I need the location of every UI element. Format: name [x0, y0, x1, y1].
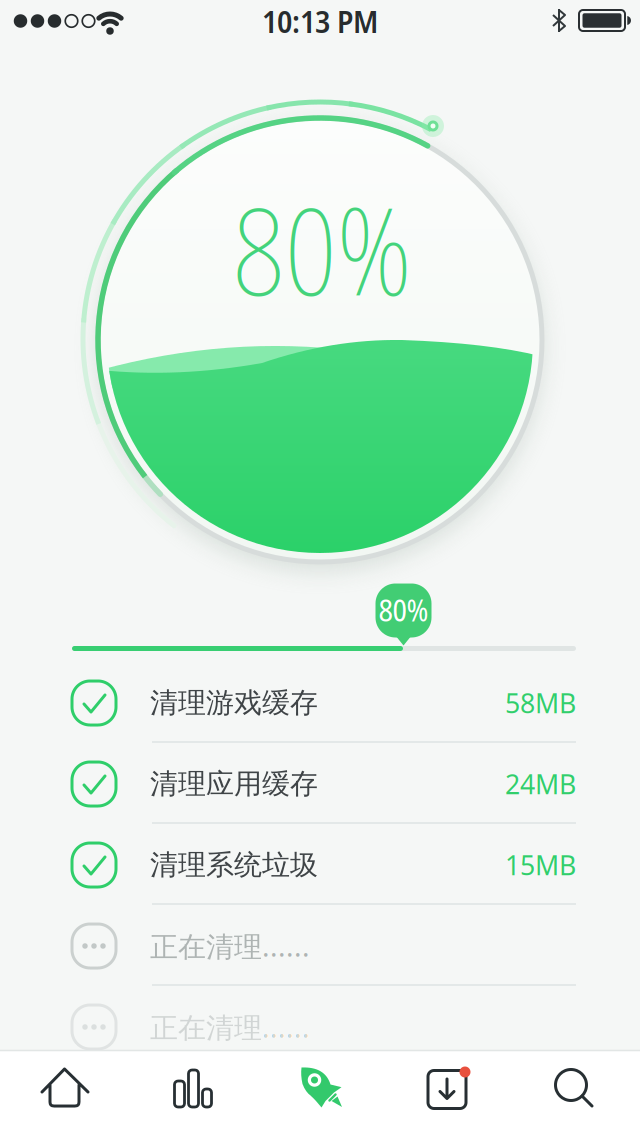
- button[interactable]: Clean: [256, 1050, 384, 1136]
- staticText: 10:13 PM: [262, 0, 378, 42]
- staticText: 80%: [232, 167, 411, 331]
- button[interactable]: Home: [0, 1050, 128, 1136]
- staticText: 正在清理......: [150, 927, 310, 965]
- button[interactable]: Downloads: [384, 1050, 512, 1136]
- staticText: 80%: [378, 589, 428, 630]
- button[interactable]: Search: [512, 1050, 640, 1136]
- button[interactable]: Statistics: [128, 1050, 256, 1136]
- staticText: 清理应用缓存: [150, 767, 318, 801]
- staticText: 清理系统垃圾: [150, 848, 318, 882]
- staticText: 58MB: [505, 685, 576, 721]
- staticText: 清理游戏缓存: [150, 686, 318, 720]
- staticText: 正在清理......: [150, 1008, 310, 1046]
- staticText: 24MB: [505, 766, 576, 802]
- staticText: 15MB: [505, 847, 576, 883]
